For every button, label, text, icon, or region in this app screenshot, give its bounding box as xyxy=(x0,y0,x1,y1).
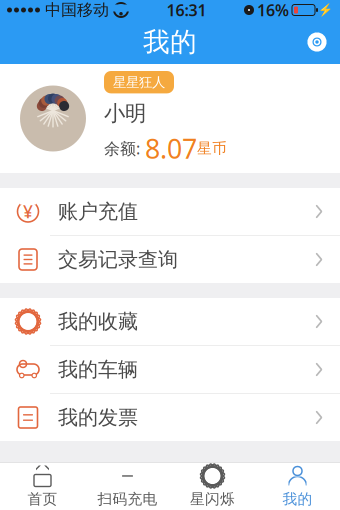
button[interactable]: 扫码充电 xyxy=(85,460,170,510)
staticText: 小明 xyxy=(104,100,146,127)
staticText: 星闪烁 xyxy=(190,490,235,508)
staticText: 扫码充电 xyxy=(97,490,157,508)
staticText: 我的发票 xyxy=(58,405,138,430)
button[interactable]: 我的 xyxy=(255,460,340,510)
staticText: 16% xyxy=(257,0,289,21)
button[interactable]: 交易记录查询 xyxy=(0,236,340,283)
staticText: ⚡ xyxy=(318,3,333,17)
staticText: 我的收藏 xyxy=(58,309,138,334)
staticText: 我的车辆 xyxy=(58,357,138,382)
staticText: ¥ xyxy=(23,200,33,223)
staticText: 我的 xyxy=(282,490,312,508)
staticText: 16:31 xyxy=(166,0,206,21)
staticText: 账户充值 xyxy=(58,199,138,224)
button[interactable]: 我的收藏 xyxy=(0,298,340,346)
button[interactable]: 首页 xyxy=(0,460,85,510)
staticText: 我的 xyxy=(143,26,197,58)
button[interactable]: Settings xyxy=(294,21,340,63)
button[interactable]: ¥ xyxy=(0,188,340,236)
staticText: 中国移动 xyxy=(45,0,109,20)
staticText: 8.07 xyxy=(145,131,197,166)
staticText: 余额: xyxy=(104,138,140,159)
button[interactable]: 星闪烁 xyxy=(170,460,255,510)
staticText: 星币 xyxy=(197,139,227,157)
staticText: 交易记录查询 xyxy=(58,247,178,272)
button[interactable]: 我的车辆 xyxy=(0,346,340,394)
staticText: 首页 xyxy=(27,490,57,508)
staticText: 星星狂人 xyxy=(113,74,165,90)
button[interactable]: 我的发票 xyxy=(0,394,340,441)
